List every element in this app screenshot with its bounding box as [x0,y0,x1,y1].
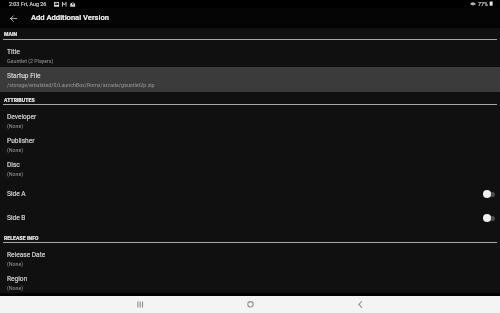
staticText: Gauntlet (2 Players) [7,58,54,64]
staticText: /storage/emulated/0/LaunchBox/Roms/arcad… [7,82,155,88]
button[interactable]: Developer [0,108,500,133]
staticText: (None) [7,123,24,129]
staticText: (None) [7,285,24,291]
staticText: Disc [7,161,20,169]
staticText: Release Date [7,251,46,259]
button[interactable]: Back [3,8,23,28]
staticText: (None) [7,171,24,177]
button[interactable]: Disc [0,156,500,181]
staticText: 77% [478,1,489,7]
button[interactable]: Title [0,43,500,68]
staticText: Developer [7,113,37,121]
staticText: (None) [7,261,24,267]
staticText: Fri, Aug 26 [21,1,47,7]
staticText: Add Additional Version [31,13,109,22]
staticText: Side A [7,190,26,198]
staticText: Publisher [7,137,35,145]
button[interactable]: Side A [0,181,500,206]
staticText: Startup File [7,72,41,80]
staticText: Title [7,48,20,56]
staticText: Side B [7,214,26,222]
button[interactable]: Recent apps [131,296,150,313]
button[interactable]: Release Date [0,246,500,271]
staticText: (None) [7,147,24,153]
staticText: Region [7,275,28,283]
button[interactable]: Startup File [0,67,500,92]
button[interactable]: Home [241,296,260,313]
button[interactable]: Back [351,296,370,313]
button[interactable]: Region [0,270,500,295]
staticText: 2:03 [9,1,20,7]
button[interactable]: Publisher [0,132,500,157]
button[interactable]: Side B [0,205,500,230]
staticText: RELEASE INFO [4,235,39,241]
staticText: ATTRIBUTES [4,97,35,103]
staticText: MAIN [4,31,18,37]
